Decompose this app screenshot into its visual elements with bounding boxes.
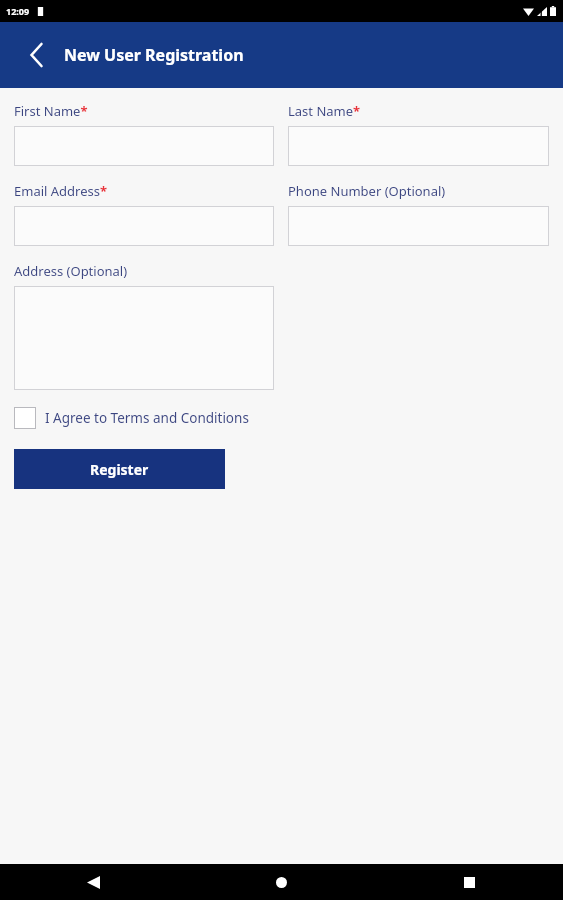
button[interactable]: Back xyxy=(16,34,58,76)
button[interactable] xyxy=(288,206,549,246)
button[interactable]: I Agree to Terms and Conditions xyxy=(14,405,249,431)
staticText: Email Address* xyxy=(14,182,108,200)
staticText: Register xyxy=(90,460,149,479)
staticText: I Agree to Terms and Conditions xyxy=(45,409,249,427)
button[interactable]: Home xyxy=(187,864,375,900)
staticText: Address (Optional) xyxy=(14,262,128,280)
staticText: Phone Number (Optional) xyxy=(288,182,446,200)
button[interactable] xyxy=(14,126,274,166)
staticText: First Name* xyxy=(14,102,88,120)
button[interactable] xyxy=(288,126,549,166)
button[interactable]: Recent apps xyxy=(375,864,563,900)
button[interactable]: Back xyxy=(0,864,187,900)
button[interactable]: Register xyxy=(14,449,225,489)
staticText: Last Name* xyxy=(288,102,361,120)
staticText: New User Registration xyxy=(64,44,244,66)
staticText: 12:09 xyxy=(6,5,30,17)
button[interactable] xyxy=(14,206,274,246)
button[interactable] xyxy=(14,286,274,390)
